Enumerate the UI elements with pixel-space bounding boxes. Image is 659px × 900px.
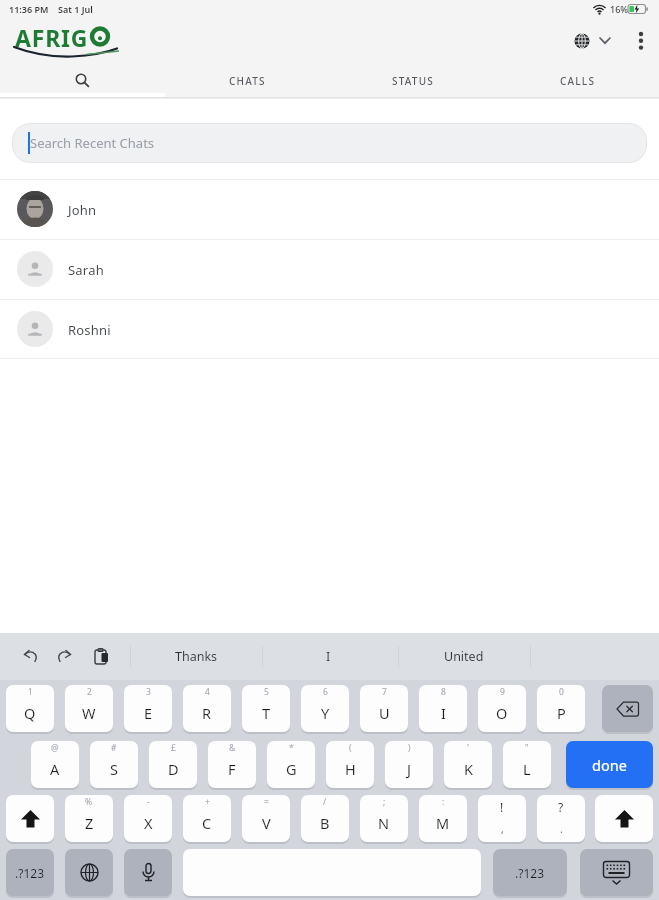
staticText: V xyxy=(262,813,271,833)
button[interactable] xyxy=(602,685,653,732)
staticText: Search Recent Chats xyxy=(30,134,155,152)
staticText: 4 xyxy=(205,686,210,698)
button[interactable] xyxy=(65,849,113,896)
button[interactable]: 5 xyxy=(242,685,290,732)
button[interactable]: / xyxy=(301,795,349,842)
button[interactable]: # xyxy=(90,741,138,788)
button[interactable]: + xyxy=(183,795,231,842)
staticText: K xyxy=(464,759,473,779)
button[interactable]: @ xyxy=(31,741,79,788)
button[interactable]: CALLS xyxy=(495,64,659,97)
button[interactable]: - xyxy=(124,795,172,842)
button[interactable]: I xyxy=(262,634,394,679)
staticText: % xyxy=(85,796,93,808)
staticText: B xyxy=(320,813,330,833)
button[interactable]: CHATS xyxy=(165,64,330,97)
button[interactable]: 4 xyxy=(183,685,231,732)
staticText: Thanks xyxy=(175,648,218,665)
staticText: + xyxy=(205,796,210,808)
button[interactable]: " xyxy=(503,741,551,788)
staticText: S xyxy=(110,759,118,779)
staticText: G xyxy=(286,759,297,779)
staticText: , xyxy=(501,821,504,836)
button[interactable]: .?123 xyxy=(493,849,567,896)
staticText: 9 xyxy=(500,686,505,698)
staticText: AFRIG xyxy=(15,22,89,53)
button[interactable]: 8 xyxy=(419,685,467,732)
button[interactable]: 9 xyxy=(478,685,526,732)
button[interactable] xyxy=(566,26,618,56)
staticText: John xyxy=(68,201,97,219)
button[interactable]: John xyxy=(0,180,659,239)
button[interactable]: STATUS xyxy=(330,64,495,97)
button[interactable]: & xyxy=(208,741,256,788)
staticText: Sat 1 Jul xyxy=(58,3,93,15)
button[interactable]: 2 xyxy=(65,685,113,732)
button[interactable]: ( xyxy=(326,741,374,788)
button[interactable] xyxy=(626,26,654,56)
staticText: F xyxy=(228,759,236,779)
staticText: ) xyxy=(408,742,411,754)
staticText: ( xyxy=(349,742,352,754)
staticText: 16% xyxy=(610,3,628,15)
staticText: @ xyxy=(51,742,59,754)
button[interactable]: : xyxy=(419,795,467,842)
button[interactable]: ) xyxy=(385,741,433,788)
staticText: Roshni xyxy=(68,321,111,339)
button[interactable]: Sarah xyxy=(0,240,659,299)
button[interactable]: * xyxy=(267,741,315,788)
staticText: CHATS xyxy=(229,74,266,88)
button[interactable]: = xyxy=(242,795,290,842)
button[interactable] xyxy=(595,795,653,842)
button[interactable] xyxy=(6,795,54,842)
button[interactable]: 3 xyxy=(124,685,172,732)
button[interactable]: United xyxy=(398,634,530,679)
button[interactable]: done xyxy=(566,741,653,788)
staticText: J xyxy=(407,759,411,779)
staticText: C xyxy=(202,813,212,833)
staticText: H xyxy=(345,759,356,779)
staticText: 5 xyxy=(264,686,269,698)
staticText: STATUS xyxy=(392,74,434,88)
staticText: . xyxy=(560,821,563,836)
button[interactable]: .?123 xyxy=(6,849,54,896)
button[interactable]: ; xyxy=(360,795,408,842)
staticText: Y xyxy=(321,703,330,723)
staticText: .?123 xyxy=(515,865,545,881)
button[interactable]: ! xyxy=(478,795,526,842)
button[interactable] xyxy=(0,64,165,97)
staticText: £ xyxy=(171,742,176,754)
staticText: CALLS xyxy=(560,74,596,88)
button[interactable]: 0 xyxy=(537,685,585,732)
staticText: 11:36 PM xyxy=(9,3,49,15)
staticText: R xyxy=(202,703,212,723)
staticText: D xyxy=(168,759,179,779)
staticText: .?123 xyxy=(15,865,45,881)
button[interactable]: % xyxy=(65,795,113,842)
button[interactable]: £ xyxy=(149,741,197,788)
staticText: 7 xyxy=(382,686,387,698)
staticText: ! xyxy=(500,799,504,815)
staticText: I xyxy=(441,703,446,723)
button[interactable]: 1 xyxy=(6,685,54,732)
button[interactable] xyxy=(124,849,172,896)
staticText: 1 xyxy=(28,686,33,698)
button[interactable]: Roshni xyxy=(0,300,659,359)
staticText: I xyxy=(326,648,331,665)
button[interactable]: 7 xyxy=(360,685,408,732)
button[interactable]: Search Recent Chats xyxy=(12,123,647,163)
button[interactable]: ' xyxy=(444,741,492,788)
staticText: 8 xyxy=(441,686,446,698)
button[interactable]: 6 xyxy=(301,685,349,732)
button[interactable] xyxy=(580,849,653,896)
staticText: X xyxy=(144,813,153,833)
staticText: done xyxy=(592,755,627,775)
button[interactable]: ? xyxy=(537,795,585,842)
staticText: U xyxy=(379,703,390,723)
staticText: O xyxy=(496,703,508,723)
staticText: M xyxy=(436,813,450,833)
staticText: = xyxy=(264,796,269,808)
button[interactable]: Thanks xyxy=(130,634,262,679)
staticText: 6 xyxy=(323,686,328,698)
